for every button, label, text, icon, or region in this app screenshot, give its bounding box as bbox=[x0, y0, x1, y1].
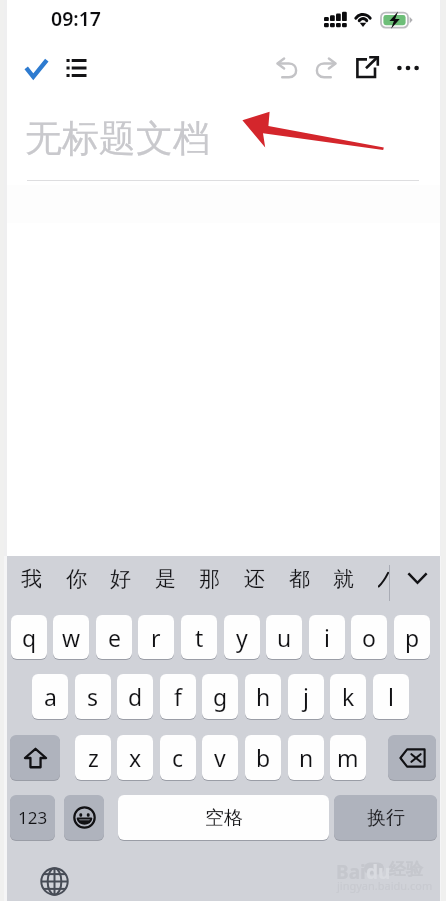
button[interactable] bbox=[378, 556, 389, 601]
button[interactable]: s bbox=[75, 674, 111, 719]
button[interactable]: b bbox=[245, 735, 281, 780]
button[interactable]: Undo bbox=[267, 48, 307, 88]
button[interactable]: h bbox=[245, 674, 281, 719]
staticText: t bbox=[195, 622, 204, 653]
button[interactable]: i bbox=[309, 615, 345, 659]
button[interactable]: m bbox=[330, 735, 366, 780]
staticText: n bbox=[299, 742, 314, 773]
button[interactable]: Switch keyboard bbox=[32, 862, 76, 901]
staticText: v bbox=[214, 742, 226, 773]
staticText: 123 bbox=[18, 806, 48, 829]
staticText: 好 bbox=[110, 566, 131, 592]
button[interactable]: q bbox=[11, 615, 47, 659]
staticText: 经验 bbox=[389, 859, 423, 880]
button[interactable]: z bbox=[75, 735, 111, 780]
staticText: s bbox=[87, 681, 99, 712]
button[interactable]: Share bbox=[347, 48, 387, 88]
staticText: z bbox=[88, 742, 99, 773]
button[interactable]: k bbox=[330, 674, 366, 719]
button[interactable]: c bbox=[160, 735, 196, 780]
button[interactable]: List format bbox=[56, 48, 96, 88]
button[interactable]: 换行 bbox=[334, 795, 437, 840]
button[interactable]: 你 bbox=[54, 556, 98, 601]
button[interactable]: 好 bbox=[98, 556, 142, 601]
staticText: w bbox=[62, 622, 81, 653]
staticText: l bbox=[388, 681, 394, 712]
staticText: 就 bbox=[333, 566, 354, 592]
staticText: 我 bbox=[21, 566, 42, 592]
button[interactable]: f bbox=[160, 674, 196, 719]
button[interactable]: v bbox=[202, 735, 238, 780]
button[interactable]: Redo bbox=[306, 48, 346, 88]
button[interactable]: o bbox=[351, 615, 387, 659]
staticText: g bbox=[213, 681, 228, 712]
staticText: p bbox=[405, 622, 420, 653]
staticText: k bbox=[342, 681, 355, 712]
staticText: 无标题文档 bbox=[25, 115, 210, 162]
button[interactable]: 我 bbox=[9, 556, 53, 601]
staticText: 空格 bbox=[205, 806, 243, 830]
button[interactable]: 就 bbox=[321, 556, 365, 601]
button[interactable]: x bbox=[117, 735, 153, 780]
staticText: u bbox=[277, 622, 292, 653]
staticText: 都 bbox=[289, 566, 310, 592]
staticText: j bbox=[303, 681, 309, 712]
staticText: d bbox=[128, 681, 143, 712]
staticText: b bbox=[256, 742, 271, 773]
staticText: x bbox=[129, 742, 142, 773]
button[interactable]: More options bbox=[388, 48, 428, 88]
button[interactable]: 空格 bbox=[118, 795, 329, 840]
button[interactable]: l bbox=[373, 674, 409, 719]
staticText: o bbox=[362, 622, 376, 653]
button[interactable]: w bbox=[53, 615, 89, 659]
staticText: du bbox=[366, 859, 391, 885]
button[interactable]: p bbox=[394, 615, 430, 659]
staticText: q bbox=[22, 622, 37, 653]
staticText: m bbox=[337, 742, 359, 773]
button[interactable]: Done bbox=[14, 48, 58, 88]
staticText: y bbox=[236, 622, 248, 653]
staticText: e bbox=[108, 622, 121, 653]
staticText: a bbox=[44, 681, 57, 712]
button[interactable]: 还 bbox=[232, 556, 276, 601]
button[interactable]: e bbox=[96, 615, 132, 659]
button[interactable]: 那 bbox=[187, 556, 231, 601]
button[interactable]: Backspace bbox=[388, 735, 436, 780]
staticText: Bai bbox=[336, 859, 366, 885]
button[interactable]: u bbox=[266, 615, 302, 659]
staticText: r bbox=[151, 622, 161, 653]
button[interactable]: 是 bbox=[143, 556, 187, 601]
staticText: jingyan.baidu.com bbox=[337, 878, 433, 893]
button[interactable]: t bbox=[181, 615, 217, 659]
staticText: i bbox=[324, 622, 330, 653]
button[interactable]: d bbox=[117, 674, 153, 719]
button[interactable]: r bbox=[138, 615, 174, 659]
button[interactable]: n bbox=[288, 735, 324, 780]
staticText: 换行 bbox=[367, 806, 405, 830]
staticText: f bbox=[174, 681, 182, 712]
staticText: c bbox=[172, 742, 184, 773]
staticText: h bbox=[256, 681, 271, 712]
button[interactable]: Emoji bbox=[64, 795, 104, 840]
button[interactable]: y bbox=[224, 615, 260, 659]
button[interactable]: Hide keyboard bbox=[398, 556, 436, 601]
button[interactable]: j bbox=[288, 674, 324, 719]
button[interactable]: Shift bbox=[10, 735, 60, 780]
staticText: 还 bbox=[244, 566, 265, 592]
button[interactable]: a bbox=[32, 674, 68, 719]
staticText: 是 bbox=[155, 566, 176, 592]
staticText: 那 bbox=[199, 566, 220, 592]
button[interactable]: 123 bbox=[10, 795, 55, 840]
staticText: 你 bbox=[66, 566, 87, 592]
button[interactable]: 都 bbox=[277, 556, 321, 601]
staticText: 09:17 bbox=[51, 5, 101, 32]
button[interactable]: g bbox=[202, 674, 238, 719]
